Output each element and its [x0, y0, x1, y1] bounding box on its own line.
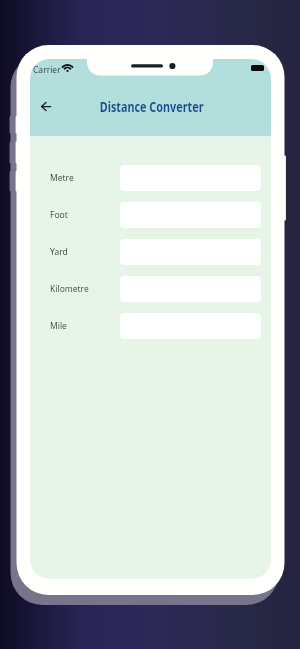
button[interactable]: Back: [32, 92, 60, 120]
staticText: Metre: [50, 172, 74, 184]
staticText: Carrier: [33, 64, 61, 76]
staticText: Mile: [50, 320, 67, 332]
staticText: Yard: [50, 246, 68, 258]
staticText: Kilometre: [50, 283, 89, 295]
staticText: Distance Converter: [100, 97, 204, 115]
staticText: Foot: [50, 209, 68, 221]
